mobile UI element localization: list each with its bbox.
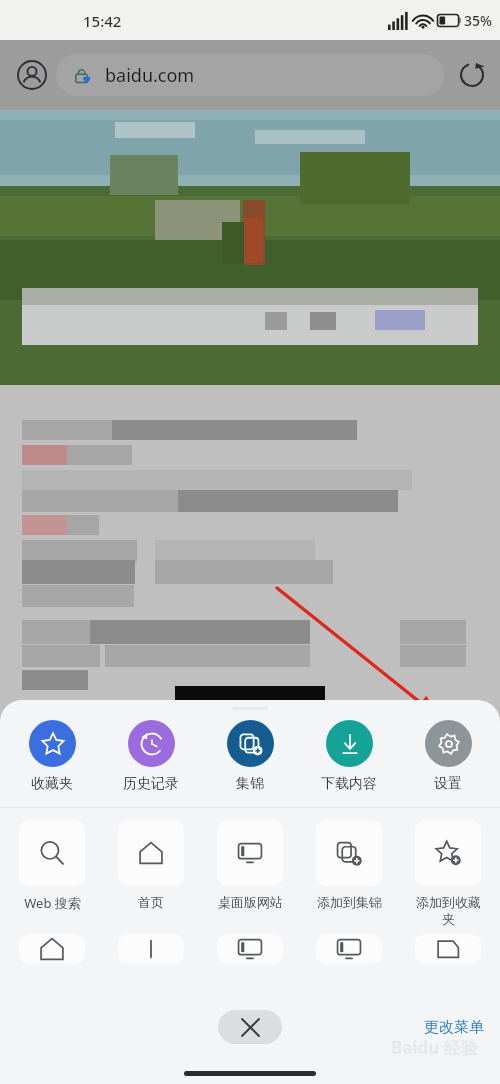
button[interactable] — [19, 934, 85, 964]
staticText: 设置 — [434, 775, 462, 793]
staticText: 下载内容 — [321, 775, 377, 793]
staticText: 35% — [464, 11, 492, 30]
button[interactable]: 添加到收藏 夹 — [400, 820, 496, 928]
staticText: 集锦 — [236, 775, 264, 793]
button[interactable]: Close — [218, 1010, 282, 1044]
staticText: 更改菜单 — [424, 1018, 484, 1037]
button[interactable] — [118, 934, 184, 964]
staticText: 首页 — [138, 894, 164, 910]
staticText: 添加到收藏 夹 — [416, 894, 481, 928]
staticText: Baidu 经验 — [391, 1036, 478, 1059]
button[interactable]: 添加到集锦 — [301, 820, 397, 910]
button[interactable]: 下载内容 — [301, 716, 397, 793]
button[interactable] — [217, 934, 283, 964]
staticText: 15:42 — [83, 11, 122, 31]
button[interactable]: 桌面版网站 — [202, 820, 298, 910]
button[interactable]: 设置 — [400, 716, 496, 793]
button[interactable]: Reload — [448, 51, 496, 99]
button[interactable] — [415, 934, 481, 964]
button[interactable]: 历史记录 — [103, 716, 199, 793]
button[interactable]: 首页 — [103, 820, 199, 910]
staticText: Web 搜索 — [24, 894, 81, 912]
staticText: 收藏夹 — [31, 775, 73, 793]
staticText: 添加到集锦 — [317, 894, 382, 910]
button[interactable]: Profile — [8, 51, 56, 99]
staticText: 历史记录 — [123, 775, 179, 793]
button[interactable]: Web 搜索 — [4, 820, 100, 912]
button[interactable] — [316, 934, 382, 964]
button[interactable]: 收藏夹 — [4, 716, 100, 793]
staticText: 桌面版网站 — [218, 894, 283, 910]
staticText: baidu.com — [105, 63, 195, 88]
button[interactable]: 集锦 — [202, 716, 298, 793]
button[interactable]: baidu.com — [56, 54, 444, 96]
button[interactable]: 更改菜单 — [420, 1014, 488, 1041]
